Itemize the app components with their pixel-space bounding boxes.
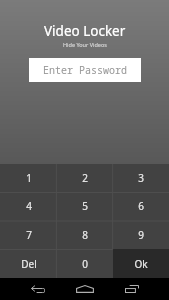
staticText: Ok	[134, 257, 148, 271]
staticText: 3	[138, 171, 144, 185]
staticText: 1	[26, 171, 32, 185]
button[interactable]: Home	[61, 278, 108, 300]
button[interactable]: Recent apps	[108, 278, 155, 300]
staticText: 5	[82, 199, 88, 213]
button[interactable]: 9	[113, 220, 169, 249]
button[interactable]: 6	[113, 192, 169, 220]
button[interactable]: Ok	[113, 249, 169, 278]
staticText: 2	[82, 171, 88, 185]
staticText: 9	[138, 228, 144, 242]
button[interactable]: 1	[0, 164, 57, 192]
staticText: Hide Your Videos	[63, 41, 107, 48]
button[interactable]: Back	[14, 278, 61, 300]
staticText: 8	[82, 228, 88, 242]
button[interactable]: 0	[57, 249, 113, 278]
staticText: Enter Password	[43, 63, 127, 77]
staticText: Video Locker	[44, 22, 126, 40]
button[interactable]: 2	[57, 164, 113, 192]
button[interactable]: 5	[57, 192, 113, 220]
staticText: 6	[138, 199, 144, 213]
button[interactable]: Enter Password	[29, 58, 141, 82]
button[interactable]: Del	[0, 249, 57, 278]
staticText: 4	[26, 199, 32, 213]
button[interactable]: 3	[113, 164, 169, 192]
staticText: Del	[21, 257, 37, 271]
button[interactable]: 4	[0, 192, 57, 220]
button[interactable]: 8	[57, 220, 113, 249]
staticText: 0	[82, 257, 88, 271]
staticText: 7	[26, 228, 32, 242]
button[interactable]: 7	[0, 220, 57, 249]
